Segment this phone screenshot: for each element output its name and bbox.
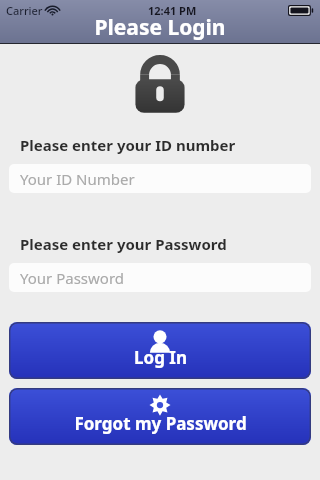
staticText: Forgot my Password (74, 412, 247, 435)
staticText: Your ID Number (20, 169, 135, 189)
staticText: 12:41 PM (148, 3, 197, 18)
staticText: Please Login (94, 13, 226, 42)
staticText: Please enter your Password (20, 234, 227, 254)
button[interactable]: Your ID Number (9, 164, 311, 193)
button[interactable]: Forgot my Password (9, 388, 311, 445)
button[interactable]: Log In (9, 322, 311, 379)
staticText: Log In (134, 346, 187, 369)
staticText: Please enter your ID number (20, 135, 236, 155)
button[interactable]: Your Password (9, 263, 311, 292)
staticText: Your Password (20, 268, 125, 288)
staticText: Carrier (6, 3, 43, 18)
